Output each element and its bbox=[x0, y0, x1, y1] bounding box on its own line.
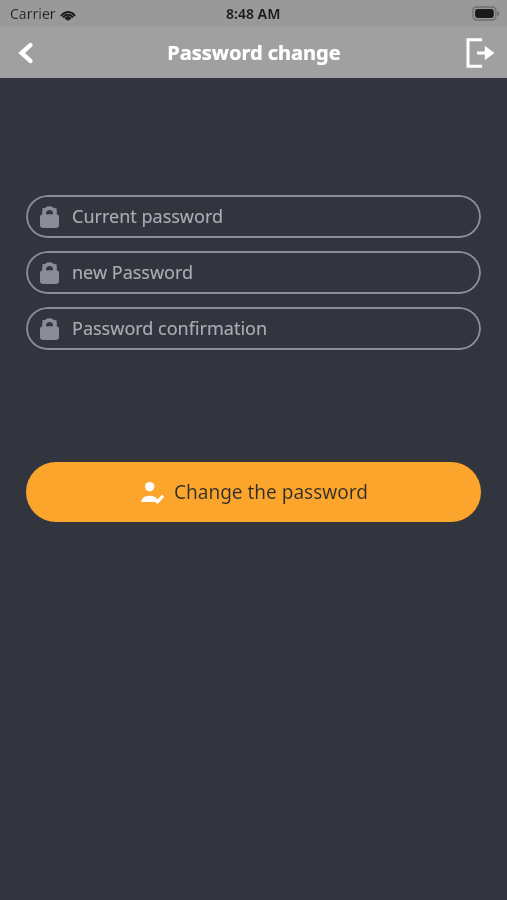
button[interactable]: new Password bbox=[26, 251, 481, 294]
staticText: new Password bbox=[72, 260, 194, 285]
button[interactable]: Password confirmation bbox=[26, 307, 481, 350]
staticText: Carrier bbox=[10, 4, 56, 23]
button[interactable]: Log out bbox=[453, 27, 507, 78]
staticText: Current password bbox=[72, 204, 224, 229]
button[interactable]: Change the password bbox=[26, 462, 481, 522]
button[interactable]: Back bbox=[0, 27, 52, 78]
staticText: 8:48 AM bbox=[226, 4, 281, 23]
staticText: Password change bbox=[167, 39, 341, 66]
staticText: Password confirmation bbox=[72, 316, 268, 341]
staticText: Change the password bbox=[174, 479, 368, 505]
button[interactable]: Current password bbox=[26, 195, 481, 238]
